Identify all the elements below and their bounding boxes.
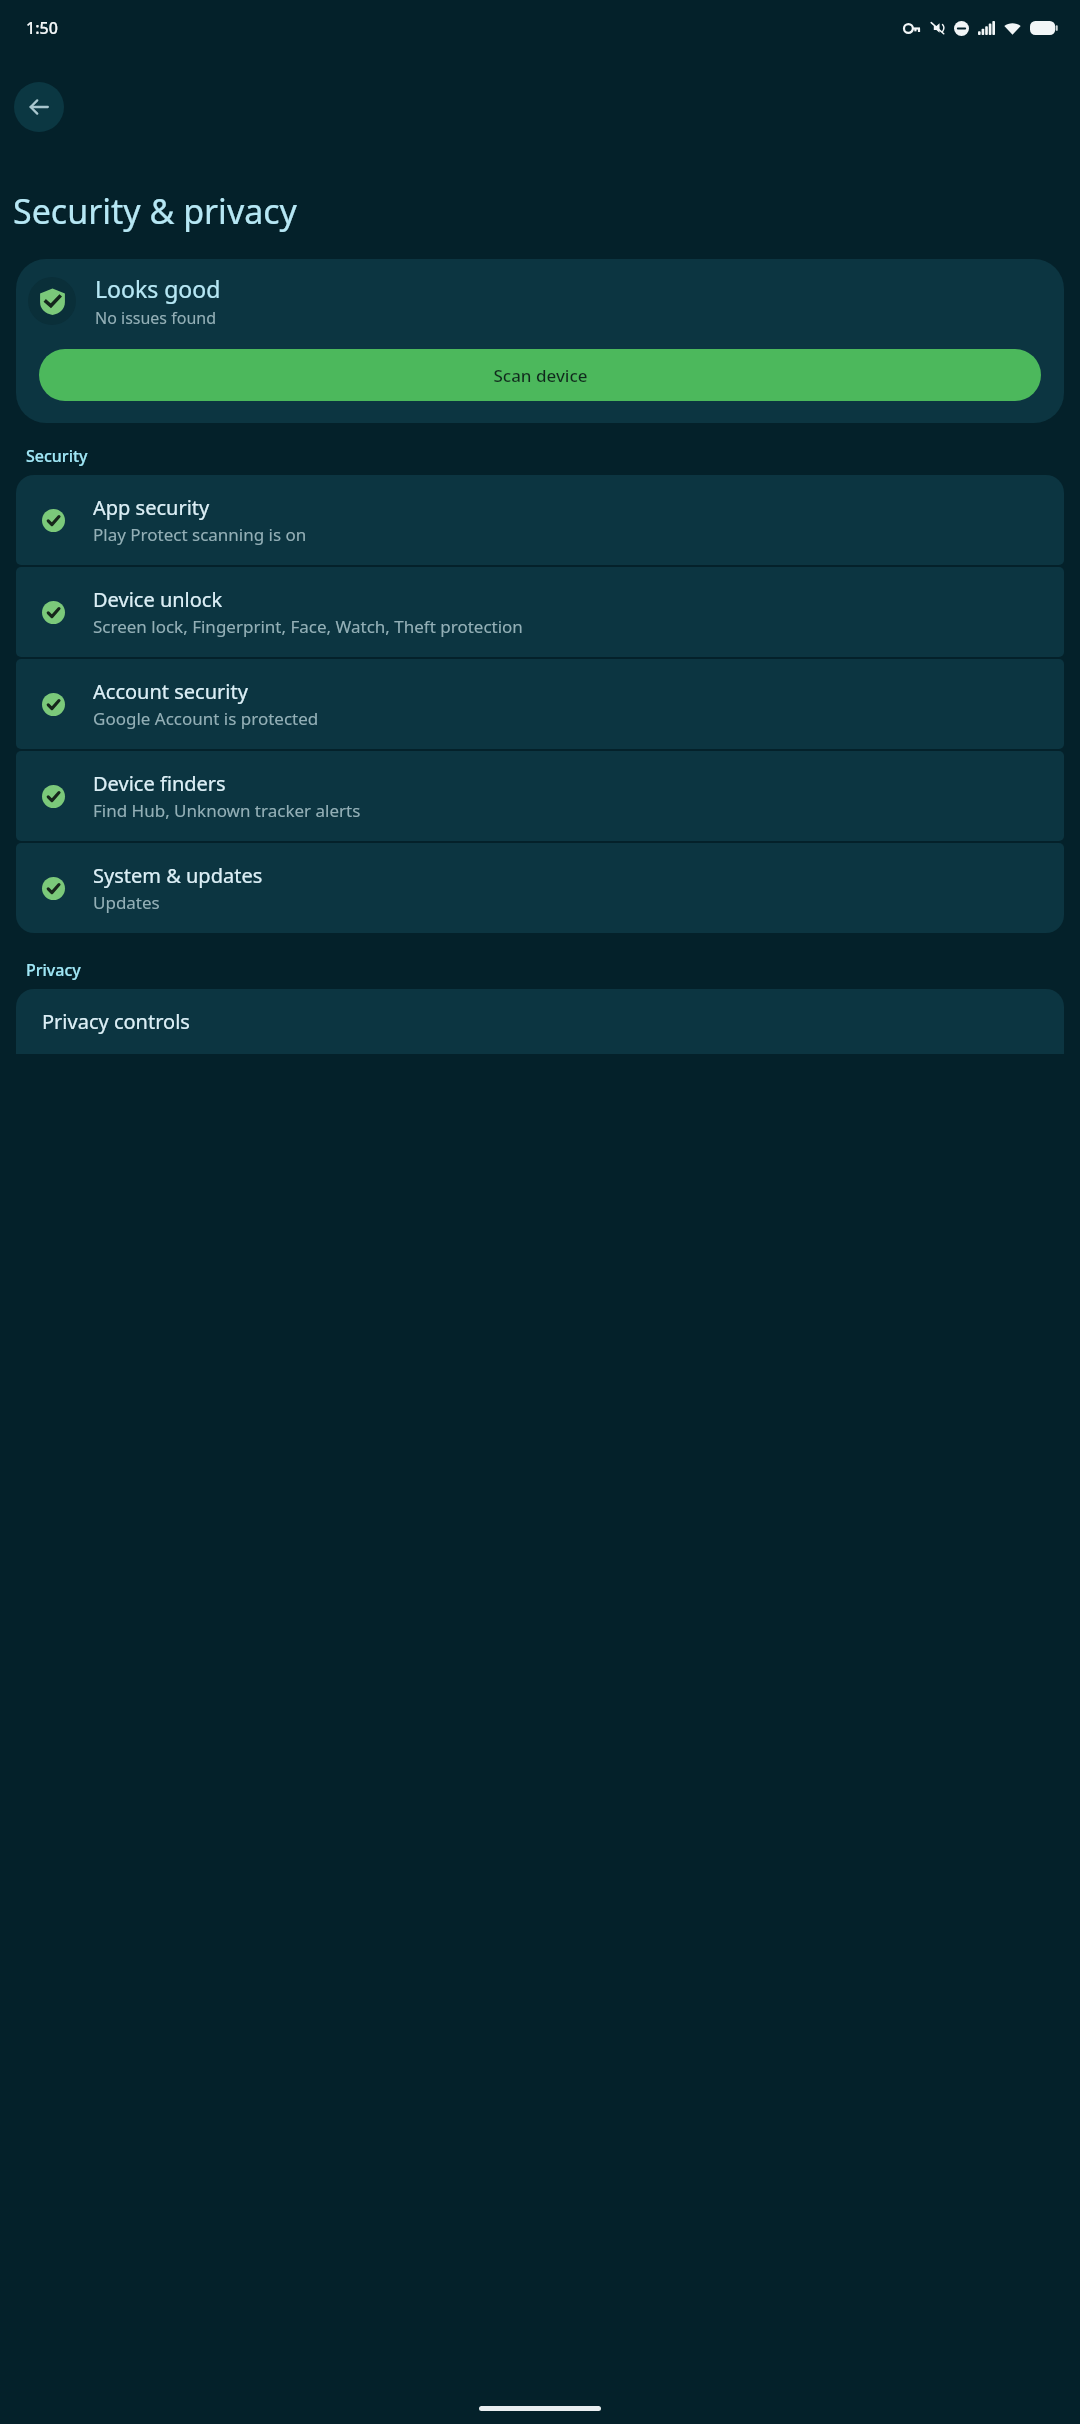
button[interactable]: Privacy controls [16, 989, 1064, 1054]
staticText: No issues found [95, 307, 216, 329]
staticText: Google Account is protected [93, 707, 319, 730]
staticText: System & updates [93, 862, 263, 889]
staticText: Updates [93, 891, 160, 914]
button[interactable]: System & updates [16, 843, 1064, 933]
staticText: Scan device [493, 364, 588, 387]
staticText: Looks good [95, 273, 221, 304]
button[interactable]: Device finders [16, 751, 1064, 841]
staticText: Privacy controls [42, 1008, 190, 1035]
staticText: Device finders [93, 770, 226, 797]
staticText: Privacy [26, 959, 81, 981]
button[interactable]: App security [16, 475, 1064, 565]
button[interactable]: Looks good [16, 259, 1064, 423]
button[interactable]: Back [14, 82, 64, 132]
staticText: App security [93, 494, 210, 521]
staticText: Security & privacy [13, 188, 297, 234]
staticText: Screen lock, Fingerprint, Face, Watch, T… [93, 615, 523, 638]
staticText: Account security [93, 678, 248, 705]
staticText: Device unlock [93, 586, 223, 613]
staticText: Security [26, 445, 88, 467]
staticText: 1:50 [26, 17, 58, 39]
button[interactable]: Device unlock [16, 567, 1064, 657]
staticText: Play Protect scanning is on [93, 523, 307, 546]
staticText: Find Hub, Unknown tracker alerts [93, 799, 361, 822]
button[interactable]: Account security [16, 659, 1064, 749]
button[interactable]: Scan device [39, 349, 1041, 401]
